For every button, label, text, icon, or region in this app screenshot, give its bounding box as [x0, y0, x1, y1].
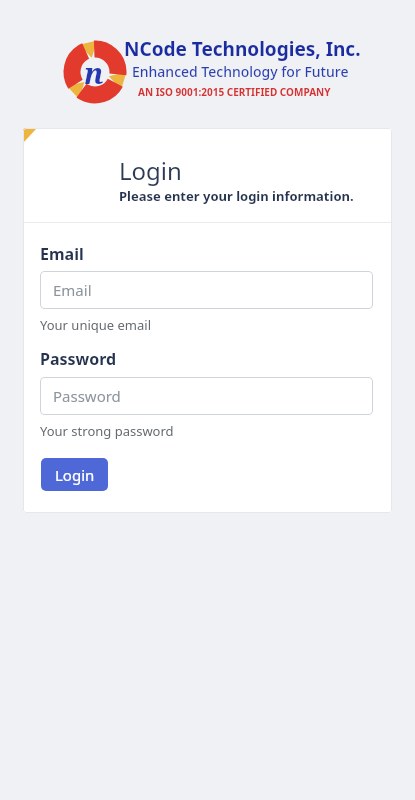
staticText: Login [119, 154, 182, 187]
staticText: Enhanced Technology for Future [132, 62, 349, 81]
button[interactable]: Login [41, 458, 108, 491]
staticText: n [84, 53, 104, 92]
button[interactable]: Email [40, 271, 373, 309]
staticText: Login [55, 465, 95, 485]
staticText: Password [40, 348, 117, 370]
staticText: Email [40, 243, 84, 265]
staticText: Password [53, 386, 121, 406]
staticText: Your unique email [40, 316, 152, 334]
staticText: Please enter your login information. [119, 187, 354, 205]
staticText: Your strong password [40, 422, 174, 440]
staticText: AN ISO 9001:2015 CERTIFIED COMPANY [138, 85, 331, 99]
staticText: Email [53, 280, 92, 300]
button[interactable]: Password [40, 377, 373, 415]
staticText: NCode Technologies, Inc. [124, 36, 361, 62]
